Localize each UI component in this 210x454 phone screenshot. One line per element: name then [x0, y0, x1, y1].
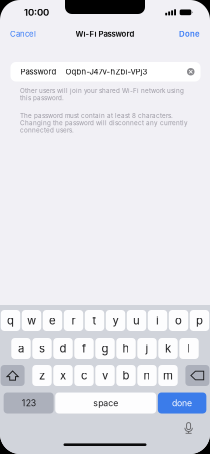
- staticText: done: [172, 398, 192, 408]
- staticText: r: [71, 314, 75, 327]
- staticText: v: [102, 369, 108, 382]
- button[interactable]: e: [43, 310, 62, 331]
- staticText: Wi-Fi Password: [75, 29, 134, 39]
- button[interactable]: g: [95, 338, 115, 359]
- staticText: f: [82, 342, 86, 355]
- staticText: z: [39, 369, 45, 382]
- button[interactable]: q: [1, 310, 20, 331]
- staticText: 123: [22, 398, 36, 408]
- button[interactable]: Cancel: [7, 25, 39, 43]
- staticText: k: [165, 342, 171, 355]
- button[interactable]: x: [53, 365, 73, 386]
- button[interactable]: k: [158, 338, 178, 359]
- button[interactable]: z: [32, 365, 52, 386]
- staticText: o: [175, 314, 182, 327]
- button[interactable]: s: [32, 338, 52, 359]
- staticText: j: [145, 342, 148, 355]
- staticText: space: [93, 398, 118, 408]
- button[interactable]: done: [158, 392, 206, 413]
- button[interactable]: t: [85, 310, 104, 331]
- staticText: g: [101, 342, 108, 355]
- button[interactable]: l: [179, 338, 199, 359]
- staticText: d: [59, 342, 66, 355]
- button[interactable]: 123: [4, 392, 54, 413]
- button[interactable]: m: [158, 365, 178, 386]
- button[interactable]: w: [22, 310, 41, 331]
- staticText: s: [39, 342, 45, 355]
- staticText: Cancel: [10, 29, 36, 39]
- button[interactable]: space: [55, 392, 156, 413]
- staticText: m: [163, 369, 173, 382]
- button[interactable]: y: [106, 310, 125, 331]
- button[interactable]: j: [137, 338, 157, 359]
- button[interactable]: f: [74, 338, 94, 359]
- button[interactable]: c: [74, 365, 94, 386]
- button[interactable]: Done: [176, 25, 203, 43]
- button[interactable]: r: [64, 310, 83, 331]
- staticText: x: [60, 369, 66, 382]
- staticText: l: [187, 342, 190, 355]
- staticText: w: [27, 314, 36, 327]
- staticText: c: [81, 369, 87, 382]
- button[interactable]: p: [190, 310, 209, 331]
- staticText: a: [18, 342, 24, 355]
- staticText: p: [196, 314, 203, 327]
- button[interactable]: Shift: [1, 365, 25, 386]
- button[interactable]: i: [148, 310, 167, 331]
- button[interactable]: v: [95, 365, 115, 386]
- button[interactable]: Clear text: [185, 66, 196, 77]
- staticText: n: [143, 369, 150, 382]
- staticText: 10:00: [24, 7, 49, 18]
- button[interactable]: h: [116, 338, 136, 359]
- staticText: t: [92, 314, 96, 327]
- button[interactable]: n: [137, 365, 157, 386]
- button[interactable]: d: [53, 338, 73, 359]
- button[interactable]: o: [169, 310, 188, 331]
- staticText: e: [49, 314, 56, 327]
- staticText: b: [122, 369, 129, 382]
- staticText: y: [112, 314, 118, 327]
- staticText: h: [122, 342, 129, 355]
- button[interactable]: b: [116, 365, 136, 386]
- staticText: Done: [179, 29, 200, 39]
- button[interactable]: u: [127, 310, 146, 331]
- staticText: Password: [20, 67, 56, 76]
- button[interactable]: a: [11, 338, 31, 359]
- staticText: Other users will join your shared Wi-Fi …: [20, 87, 184, 102]
- staticText: i: [156, 314, 159, 327]
- button[interactable]: Delete: [185, 365, 209, 386]
- staticText: The password must contain at least 8 cha…: [20, 112, 188, 134]
- staticText: u: [133, 314, 140, 327]
- staticText: q: [7, 314, 14, 327]
- staticText: Oqbn-J47v-hZbi-VPj3: [65, 67, 147, 76]
- button[interactable]: Dictation: [182, 421, 195, 434]
